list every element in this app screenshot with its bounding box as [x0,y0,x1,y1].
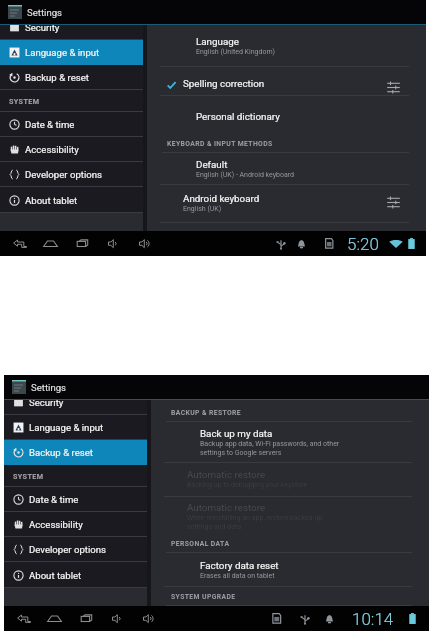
staticText: Language & input [29,422,104,433]
staticText: Personal dictionary [196,111,280,122]
button[interactable]: Recent apps [79,606,95,631]
button[interactable]: Factory data reset [151,560,429,580]
button[interactable]: Security [4,390,147,415]
button[interactable]: About tablet [0,188,143,213]
button[interactable]: Accessibility [0,137,143,162]
button[interactable]: Security [0,15,143,40]
staticText: Spelling correction [183,78,265,89]
staticText: Date & time [25,119,75,130]
button[interactable]: Android keyboard [147,193,426,213]
button[interactable]: Back [16,606,32,631]
staticText: Backing up to debugging your keystore [187,481,308,489]
button[interactable]: Backup & reset [4,440,147,465]
staticText: SYSTEM UPGRADE [171,593,236,601]
staticText: Accessibility [25,144,79,155]
button[interactable]: Volume down [110,606,126,631]
button[interactable]: Personal dictionary [147,111,426,122]
button[interactable]: Language [147,36,426,56]
staticText: English (United Kingdom) [196,48,275,56]
staticText: Automatic restore [187,469,266,480]
staticText: SYSTEM [9,97,40,105]
staticText: Settings [27,7,63,18]
staticText: 5:20 [347,234,379,254]
button[interactable]: About tablet [4,563,147,588]
staticText: Security [29,397,64,408]
staticText: Backup & reset [25,72,89,83]
staticText: About tablet [29,570,82,581]
button[interactable]: Volume down [106,231,122,256]
button[interactable]: Back up my data [151,428,429,457]
staticText: Erases all data on tablet [200,572,275,580]
button[interactable]: Volume up [141,606,157,631]
staticText: Factory data reset [200,560,279,571]
staticText: Settings [31,382,67,393]
button[interactable]: Developer options [4,537,147,562]
button[interactable]: Date & time [0,112,143,137]
staticText: Date & time [29,494,79,505]
staticText: SYSTEM [13,472,44,480]
button[interactable]: Language & input [4,415,147,440]
button[interactable]: Developer options [0,162,143,187]
button[interactable]: Default [147,159,426,179]
button[interactable]: Volume up [137,231,153,256]
button[interactable]: Language & input [0,40,143,65]
staticText: Automatic restore [187,502,266,513]
staticText: English (UK) - Android keyboard [196,171,295,179]
button[interactable]: Accessibility [4,512,147,537]
staticText: English (UK) [183,205,222,213]
staticText: Security [25,22,60,33]
staticText: Default [196,159,228,170]
button[interactable]: Automatic restore [151,469,429,489]
staticText: Developer options [25,169,102,180]
button[interactable]: Backup & reset [0,65,143,90]
staticText: Backup & reset [29,447,93,458]
staticText: Language [196,36,239,47]
button[interactable]: Back [12,231,28,256]
staticText: BACKUP & RESTORE [171,409,242,417]
button[interactable]: Home [46,606,62,631]
button[interactable]: Recent apps [75,231,91,256]
staticText: About tablet [25,195,78,206]
button[interactable]: Automatic restore [151,502,429,531]
staticText: Accessibility [29,519,83,530]
staticText: When reinstalling an app, restore backed… [187,514,323,531]
staticText: 10:14 [352,609,394,629]
button[interactable]: Home [42,231,58,256]
staticText: PERSONAL DATA [171,540,230,548]
button[interactable]: Date & time [4,487,147,512]
staticText: Developer options [29,544,106,555]
staticText: Language & input [25,47,100,58]
staticText: KEYBOARD & INPUT METHODS [167,140,273,148]
staticText: Back up my data [200,428,273,439]
button[interactable]: Spelling correction [147,78,426,93]
staticText: Android keyboard [183,193,260,204]
staticText: Backup app data, Wi-Fi passwords, and ot… [200,440,340,457]
